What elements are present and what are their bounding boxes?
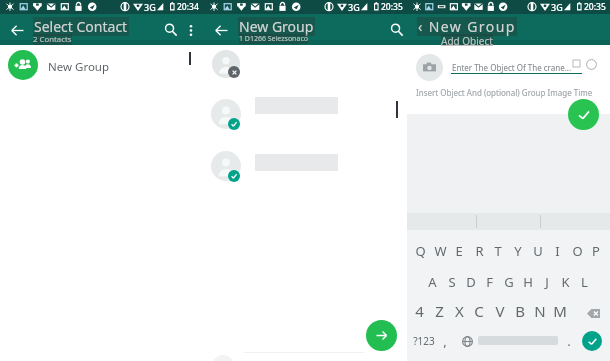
button[interactable]: Search [386,19,408,41]
button[interactable]: W [430,240,450,262]
button[interactable]: G [499,271,518,293]
button[interactable]: New Group [0,45,204,85]
staticText: Insert Object And (optional) Group Image… [416,87,593,98]
staticText: A [428,273,437,291]
button[interactable]: C [469,300,489,322]
button[interactable]: Add group icon [416,54,443,81]
staticText: J [545,273,549,291]
button[interactable]: U [528,240,548,262]
staticText: Z [435,301,444,321]
button[interactable]: N [530,300,550,322]
staticText: L [581,273,588,291]
staticText: Q [415,242,426,260]
staticText: C [474,301,484,321]
button[interactable]: Next [366,320,397,351]
button[interactable] [204,151,407,189]
staticText: N [534,301,546,321]
button[interactable]: E [449,240,469,262]
staticText: V [495,301,505,321]
button[interactable]: M [550,300,570,322]
staticText: K [561,273,570,291]
staticText: Add Object [441,34,493,46]
button[interactable]: Q [410,240,430,262]
button[interactable]: L [575,271,594,293]
button[interactable] [204,99,407,137]
button[interactable]: ?123 [408,331,440,351]
staticText: 3G [348,1,360,13]
button[interactable]: I [547,240,567,262]
button[interactable]: Backspace [583,304,603,322]
staticText: 2 Contacts [33,34,72,45]
button[interactable]: Z [429,300,449,322]
staticText: New Group [48,59,110,75]
staticText: Y [514,242,522,260]
staticText: Enter The Object Of The crane... [452,62,572,73]
button[interactable]: H [518,271,537,293]
button[interactable]: F [480,271,499,293]
staticText: 1 D1266 Selezsonaco [239,34,308,44]
staticText: 20:35 [381,1,403,13]
button[interactable]: K [556,271,575,293]
button[interactable]: Back [408,21,426,39]
staticText: W [434,242,447,260]
button[interactable]: 4 [409,300,429,322]
button[interactable]: Y [508,240,528,262]
staticText: 20:34 [177,1,199,13]
staticText: B [515,301,525,321]
staticText: T [494,242,502,260]
button[interactable]: P [586,240,606,262]
staticText: H [523,273,533,291]
staticText: M [553,301,567,321]
staticText: E [455,242,463,260]
staticText: 3G [551,1,563,13]
button[interactable]: D [461,271,480,293]
staticText: 3G [144,1,156,13]
staticText: P [592,242,600,260]
staticText: 4 [415,301,424,321]
button[interactable]: V [490,300,510,322]
button[interactable]: Change language [457,331,477,351]
staticText: ‹ New Group [418,17,516,36]
staticText: R [475,242,484,260]
staticText: , [443,332,447,350]
button[interactable]: Confirm [568,99,599,130]
staticText: G [504,273,514,291]
button[interactable]: J [537,271,556,293]
staticText: ?123 [413,334,435,348]
button[interactable]: . [562,331,576,351]
button[interactable]: Search [160,19,182,41]
staticText: New Group [239,17,314,36]
staticText: . [567,332,571,350]
button[interactable]: Remove [228,66,240,78]
staticText: X [455,301,464,321]
staticText: I [555,242,560,260]
staticText: D [466,273,476,291]
button[interactable]: , [438,331,452,351]
button[interactable]: O [567,240,587,262]
button[interactable]: T [488,240,508,262]
button[interactable]: R [469,240,489,262]
button[interactable]: A [423,271,442,293]
staticText: U [533,242,543,260]
staticText: S [448,273,456,291]
button[interactable]: S [442,271,461,293]
staticText: Select Contact [34,17,128,36]
staticText: 20:35 [584,1,606,13]
button[interactable]: Back [8,21,26,39]
button[interactable]: X [449,300,469,322]
staticText: F [486,273,493,291]
staticText: O [572,242,583,260]
button[interactable]: Back [212,21,230,39]
button[interactable]: More options [182,21,200,39]
button[interactable]: B [510,300,530,322]
button[interactable]: Enter [582,331,602,351]
